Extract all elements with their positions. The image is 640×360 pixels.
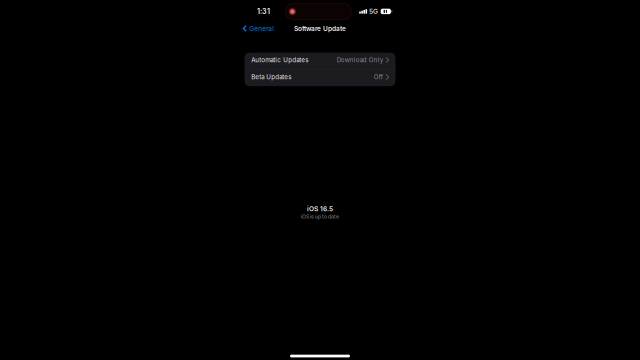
button[interactable]: Beta Updates [244,70,395,86]
staticText: iOS is up to date [301,213,339,220]
staticText: Beta Updates [251,73,291,81]
button[interactable]: Back to General [236,21,279,36]
staticText: Download Only [337,56,383,64]
button[interactable]: Automatic Updates [244,53,395,69]
staticText: 5G [369,7,378,15]
staticText: Off [374,73,383,81]
staticText: Automatic Updates [251,56,308,64]
staticText: iOS 16.5 [307,205,333,213]
staticText: Software Update [294,24,346,32]
staticText: General [249,24,274,32]
staticText: 1:31 [257,7,270,16]
